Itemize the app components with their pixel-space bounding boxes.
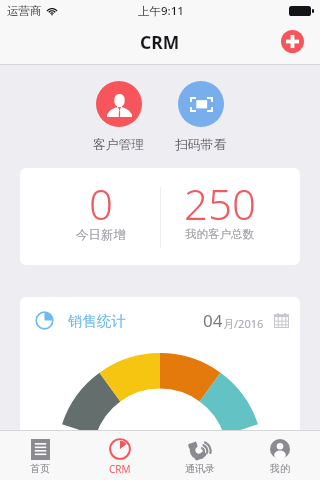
staticText: 首页	[30, 462, 50, 475]
staticText: 250	[184, 175, 256, 232]
button[interactable]: CRM	[80, 431, 160, 480]
button[interactable]: 我的	[240, 431, 320, 480]
staticText: 销售统计	[68, 312, 126, 330]
staticText: CRM	[109, 462, 131, 476]
staticText: 今日新增	[76, 227, 126, 243]
staticText: CRM	[140, 30, 180, 54]
staticText: 上午9:11	[138, 3, 184, 19]
button[interactable]: 通讯录	[160, 431, 240, 480]
button[interactable]: 首页	[0, 431, 80, 480]
button[interactable]: Add	[281, 30, 304, 53]
staticText: 04	[203, 309, 223, 332]
button[interactable]: 0	[31, 168, 171, 265]
staticText: 运营商	[7, 4, 42, 18]
staticText: 客户管理	[93, 137, 145, 153]
staticText: 我的	[270, 462, 290, 475]
button[interactable]: 250	[150, 168, 289, 265]
button[interactable]: 客户管理	[84, 81, 154, 153]
staticText: 通讯录	[185, 462, 215, 475]
staticText: 0	[89, 175, 113, 232]
staticText: 月/2016	[223, 316, 264, 331]
staticText: 我的客户总数	[185, 227, 254, 241]
button[interactable]: 扫码带看	[166, 81, 236, 153]
staticText: 扫码带看	[175, 137, 227, 153]
